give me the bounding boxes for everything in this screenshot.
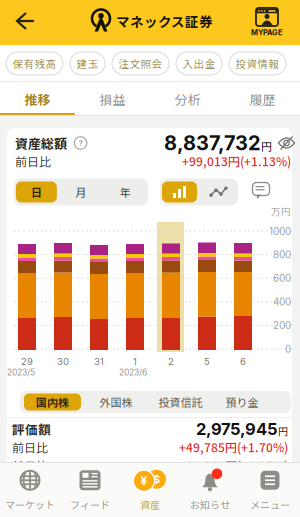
staticText: 30 [57, 356, 69, 367]
staticText: 前日比 [15, 152, 51, 170]
staticText: 200 [273, 319, 291, 331]
staticText: +21,368円(+1.25%) [179, 457, 288, 474]
staticText: 0 [285, 343, 291, 355]
button[interactable]: 建玉 [70, 52, 105, 75]
staticText: 31 [94, 356, 104, 367]
staticText: 推移 [24, 90, 50, 108]
staticText: 円 [278, 424, 288, 438]
staticText: マーケット [5, 497, 55, 512]
staticText: 万円 [271, 204, 291, 218]
button[interactable]: マネックス証券 [89, 9, 213, 33]
button[interactable]: メニュー [240, 465, 300, 515]
staticText: 前日比 [12, 438, 48, 456]
staticText: 2,975,945 [196, 419, 278, 439]
staticText: 1000 [269, 225, 291, 237]
staticText: 資産 [140, 497, 160, 512]
button[interactable]: 注文照会 [112, 52, 169, 75]
staticText: 8,837,732 [164, 131, 261, 155]
staticText: 1 [133, 356, 137, 367]
staticText: 5 [204, 356, 210, 367]
staticText: 履歴 [249, 90, 275, 108]
staticText: お知らせ [190, 497, 230, 512]
button[interactable]: 国内株 [24, 393, 81, 410]
staticText: ¥ [140, 473, 147, 488]
staticText: 円 [261, 138, 272, 154]
button[interactable]: 投資情報 [229, 52, 286, 75]
button[interactable] [7, 7, 37, 35]
button[interactable] [199, 178, 238, 205]
button[interactable]: 損益 [75, 82, 150, 116]
staticText: +49,785円(+1.70%) [179, 438, 288, 456]
staticText: 建玉 [76, 56, 98, 71]
button[interactable]: 外国株 [99, 394, 132, 410]
staticText: 年 [120, 184, 131, 200]
button[interactable]: フィード [60, 465, 120, 515]
staticText: 国内株 [36, 394, 69, 410]
staticText: 投資信託 [158, 394, 202, 410]
staticText: 分析 [174, 90, 200, 108]
staticText: 預り金 [225, 394, 258, 410]
button[interactable]: 月 [59, 178, 103, 205]
staticText: 保有残高 [12, 56, 56, 71]
staticText: 日 [31, 184, 42, 200]
button[interactable]: 年 [103, 178, 148, 205]
staticText: 29 [21, 356, 33, 367]
button[interactable]: 分析 [150, 82, 225, 116]
button[interactable]: お知らせ [180, 465, 240, 515]
staticText: 2023/6 [119, 367, 147, 378]
button[interactable]: 履歴 [225, 82, 300, 116]
staticText: 前日比 [12, 457, 48, 474]
button[interactable]: 入出金 [176, 52, 222, 75]
staticText: 800 [273, 249, 291, 261]
staticText: 投資情報 [235, 56, 279, 71]
staticText: MYPAGE [251, 28, 283, 37]
staticText: ? [78, 138, 82, 148]
button[interactable]: 投資信託 [158, 394, 202, 410]
button[interactable] [252, 182, 270, 199]
staticText: メニュー [250, 497, 290, 512]
staticText: 2 [168, 356, 174, 367]
staticText: 資産総額 [15, 134, 67, 152]
button[interactable]: マーケット [0, 465, 60, 515]
staticText: +99,013円(+1.13%) [182, 152, 291, 170]
button[interactable]: 預り金 [225, 394, 258, 410]
staticText: 損益 [99, 90, 125, 108]
staticText: 600 [273, 272, 291, 284]
button[interactable]: 推移 [0, 82, 75, 116]
staticText: マネックス証券 [116, 11, 213, 31]
staticText: 2023/5 [7, 367, 35, 378]
button[interactable]: 日 [14, 178, 59, 205]
button[interactable]: 保有残高 [6, 52, 63, 75]
button[interactable]: $ [120, 465, 180, 515]
staticText: 6 [240, 356, 246, 367]
staticText: $ [153, 473, 160, 486]
staticText: 月 [75, 184, 86, 200]
staticText: フィード [70, 497, 110, 512]
staticText: 400 [273, 296, 291, 308]
button[interactable]: MYPAGE [251, 7, 283, 37]
button[interactable] [160, 178, 199, 205]
staticText: 入出金 [182, 56, 215, 71]
staticText: 評価額 [12, 420, 51, 438]
staticText: 注文照会 [118, 56, 162, 71]
staticText: 外国株 [99, 394, 132, 410]
